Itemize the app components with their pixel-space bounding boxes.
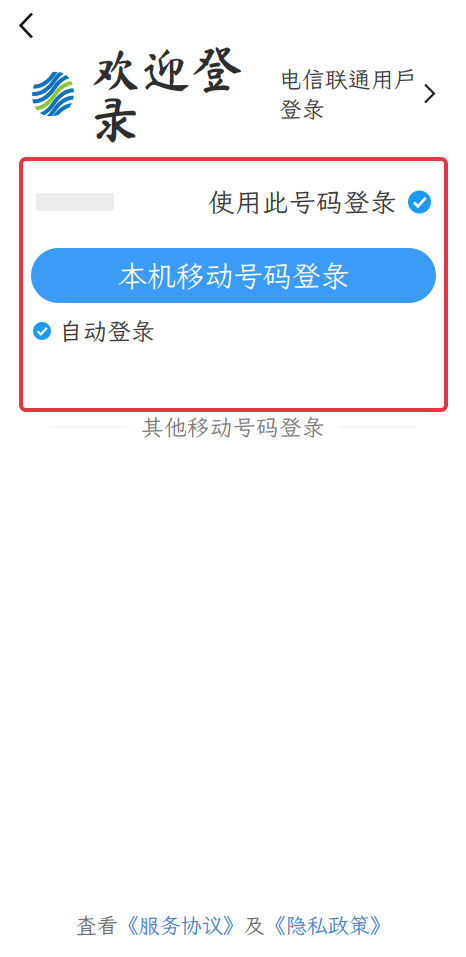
button[interactable]: Back xyxy=(0,0,70,52)
staticText: 本机移动号码登录 xyxy=(117,256,349,295)
staticText: 欢迎登录 xyxy=(90,43,243,145)
button[interactable]: 本机移动号码登录 xyxy=(31,248,436,303)
button[interactable]: 使用此号码登录 xyxy=(208,185,431,219)
button[interactable]: 电信联通用户登录 xyxy=(279,58,436,130)
staticText: 《隐私政策》 xyxy=(264,911,390,939)
staticText: 《服务协议》 xyxy=(117,911,243,939)
staticText: 使用此号码登录 xyxy=(208,184,397,219)
staticText: 自动登录 xyxy=(59,315,155,347)
staticText: 查看 xyxy=(75,911,117,939)
button[interactable]: 自动登录 xyxy=(21,316,446,346)
staticText: 电信联通用户登录 xyxy=(279,64,417,124)
staticText: 其他移动号码登录 xyxy=(141,412,325,442)
staticText: 及 xyxy=(243,911,264,939)
button[interactable]: 其他移动号码登录 xyxy=(127,412,339,442)
button[interactable]: 查看 xyxy=(0,909,466,941)
